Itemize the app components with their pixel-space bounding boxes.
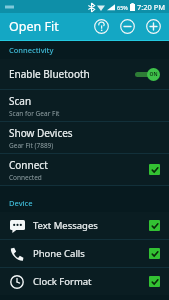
- staticText: Connected: [9, 173, 42, 182]
- button[interactable]: Enable Bluetooth: [0, 59, 169, 89]
- staticText: 65%: [117, 4, 128, 11]
- button[interactable]: Clock Format: [0, 268, 169, 295]
- button[interactable]: Connect: [0, 154, 169, 185]
- staticText: Clock Format: [33, 275, 149, 288]
- staticText: Text Messages: [33, 219, 149, 232]
- button[interactable]: Text Messages: [0, 212, 169, 239]
- button[interactable]: Show Devices: [0, 122, 169, 153]
- staticText: Open Fit: [9, 18, 59, 35]
- staticText: Connectivity: [9, 45, 54, 55]
- staticText: Scan for Gear Fit: [9, 109, 60, 118]
- staticText: Connect: [9, 158, 48, 172]
- button[interactable]: Help: [92, 17, 111, 36]
- staticText: Phone Calls: [33, 247, 149, 260]
- staticText: Gear Fit (7889): [9, 141, 54, 150]
- staticText: 7:20 PM: [137, 2, 166, 12]
- button[interactable]: Scan: [0, 90, 169, 121]
- staticText: Show Devices: [9, 126, 73, 140]
- staticText: Enable Bluetooth: [9, 67, 134, 81]
- button[interactable]: Remove: [118, 17, 137, 36]
- staticText: ON: [149, 71, 158, 78]
- staticText: Scan: [9, 94, 32, 108]
- button[interactable]: Add: [144, 17, 163, 36]
- button[interactable]: Phone Calls: [0, 240, 169, 267]
- staticText: Device: [9, 198, 33, 208]
